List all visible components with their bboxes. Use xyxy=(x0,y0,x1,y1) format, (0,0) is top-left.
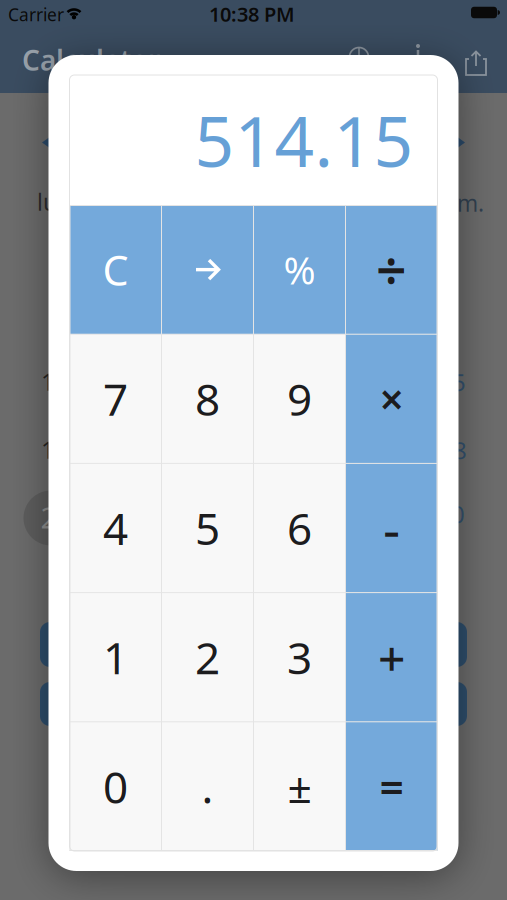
staticText: . xyxy=(201,757,213,816)
staticText: % xyxy=(283,244,315,295)
staticText: - xyxy=(383,493,400,563)
staticText: C xyxy=(102,242,128,297)
staticText: Carrier xyxy=(8,3,64,26)
button[interactable]: % xyxy=(253,205,345,334)
staticText: × xyxy=(379,370,403,427)
staticText: ± xyxy=(287,758,311,815)
button[interactable]: Share xyxy=(465,50,487,76)
button[interactable]: 6 xyxy=(253,463,345,593)
button[interactable]: ÷ xyxy=(345,205,437,334)
button[interactable]: C xyxy=(69,205,161,334)
staticText: = xyxy=(379,758,403,815)
staticText: 0 xyxy=(451,498,465,530)
button[interactable]: × xyxy=(345,334,437,463)
staticText: 4 xyxy=(103,499,128,557)
button[interactable]: = xyxy=(345,722,437,851)
staticText: 8 xyxy=(195,370,220,428)
staticText: ÷ xyxy=(376,234,407,305)
staticText: 8 xyxy=(453,434,467,466)
staticText: 514.15 xyxy=(194,94,413,186)
staticText: 1 xyxy=(41,366,55,397)
staticText: 3 xyxy=(287,628,312,686)
button[interactable]: 4 xyxy=(69,463,161,593)
staticText: 1 xyxy=(41,434,55,465)
button[interactable]: Info xyxy=(414,43,422,58)
staticText: 6 xyxy=(287,499,312,557)
staticText: Calculator xyxy=(22,41,160,79)
button[interactable]: 9 xyxy=(253,334,345,463)
staticText: lu xyxy=(37,187,57,217)
staticText: 2 xyxy=(40,497,57,536)
button[interactable]: ± xyxy=(253,722,345,851)
staticText: 10:38 PM xyxy=(209,1,295,27)
button[interactable]: 8 xyxy=(161,334,253,463)
button[interactable]: 0 xyxy=(69,722,161,851)
button[interactable]: Reset xyxy=(40,682,467,726)
staticText: 2 xyxy=(195,628,220,686)
button[interactable] xyxy=(161,205,253,334)
button[interactable]: - xyxy=(345,463,437,593)
staticText: + xyxy=(378,625,405,689)
button[interactable]: Previous xyxy=(42,136,51,149)
button[interactable]: 5 xyxy=(161,463,253,593)
button[interactable]: 3 xyxy=(253,593,345,722)
staticText: 1 xyxy=(103,628,128,686)
button[interactable]: Next xyxy=(456,136,465,149)
staticText: 7 xyxy=(103,370,128,428)
staticText: 9 xyxy=(287,370,312,428)
button[interactable]: 7 xyxy=(69,334,161,463)
button[interactable]: Language xyxy=(348,46,369,67)
button[interactable]: 1 xyxy=(69,593,161,722)
button[interactable]: 2 xyxy=(161,593,253,722)
button[interactable]: + xyxy=(345,593,437,722)
button[interactable]: . xyxy=(161,722,253,851)
staticText: m. xyxy=(457,188,484,218)
staticText: 5 xyxy=(195,499,220,557)
staticText: 5 xyxy=(452,366,466,398)
button[interactable]: Calculate xyxy=(40,622,467,667)
staticText: 0 xyxy=(103,757,128,816)
